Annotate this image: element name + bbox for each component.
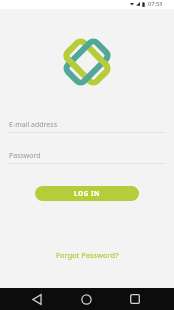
staticText: Forgot Password? <box>56 250 119 260</box>
button[interactable]: LOG IN <box>35 186 139 201</box>
button[interactable]: Password <box>0 149 174 164</box>
button[interactable]: E-mail address <box>0 118 174 133</box>
staticText: LOG IN <box>74 189 100 198</box>
staticText: E-mail address <box>9 120 57 130</box>
staticText: Password <box>9 151 41 161</box>
button[interactable]: Back <box>26 288 48 310</box>
button[interactable]: Forgot Password? <box>50 247 125 263</box>
staticText: 07:53 <box>148 0 163 8</box>
button[interactable]: Home <box>75 288 97 310</box>
button[interactable]: Recent apps <box>124 288 146 310</box>
